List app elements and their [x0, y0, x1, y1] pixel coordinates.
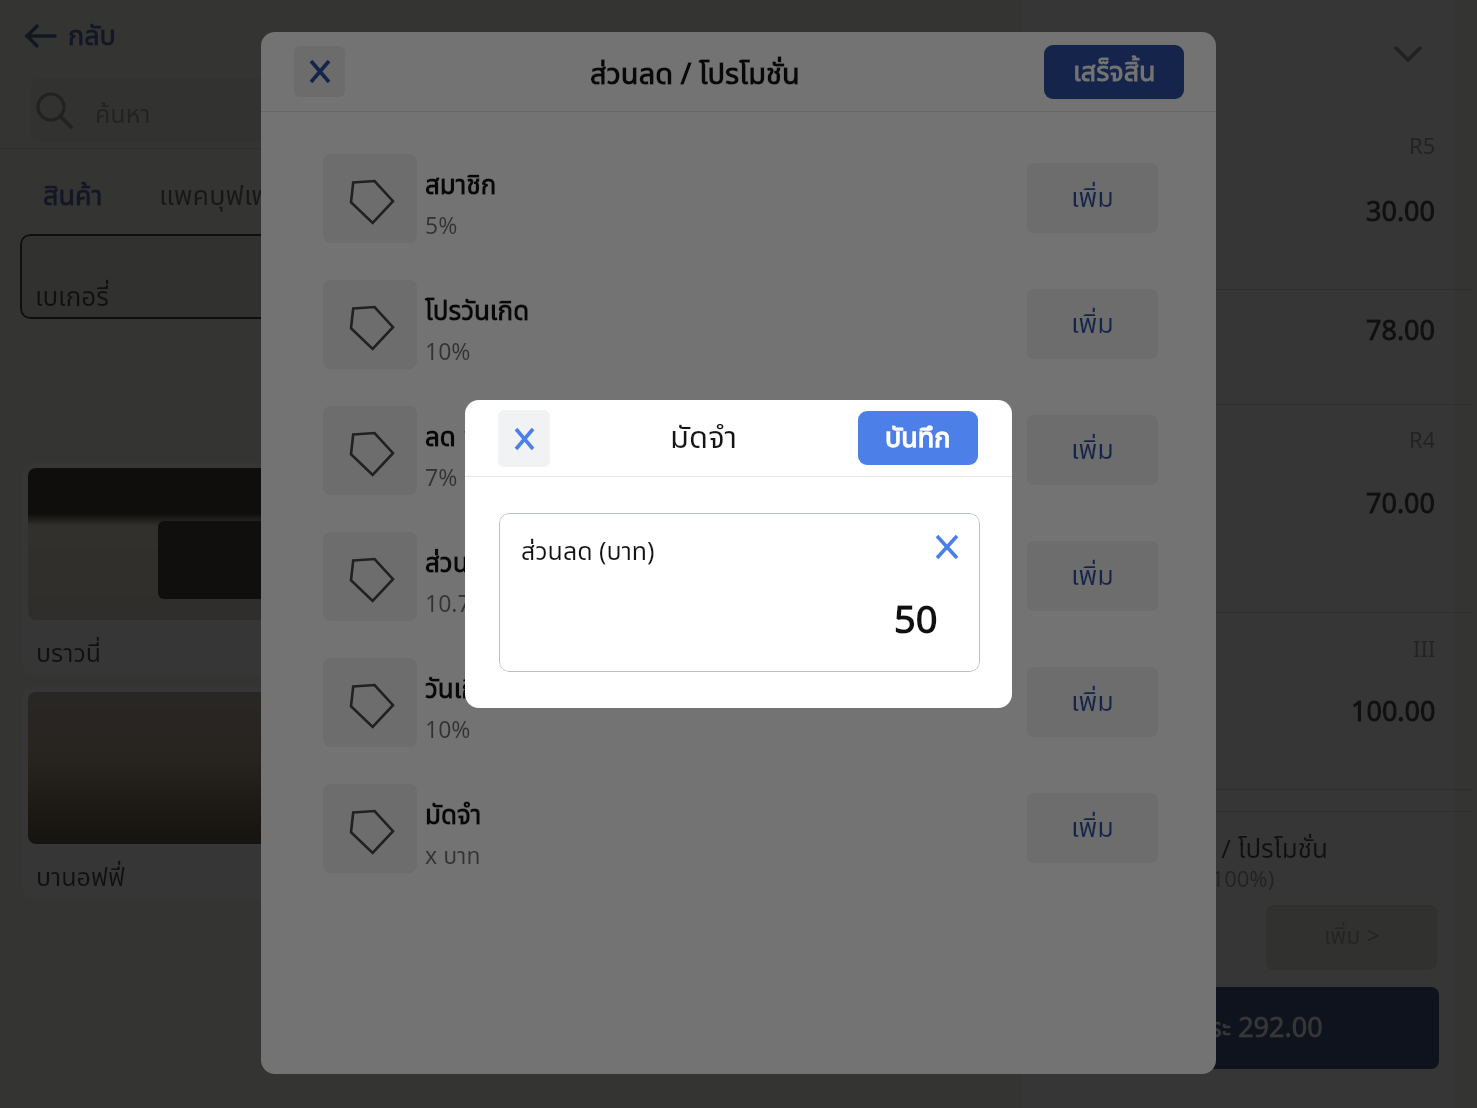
- button[interactable]: สมาชิก: [323, 135, 1158, 261]
- button[interactable]: เพิ่ม: [1027, 667, 1158, 737]
- staticText: ส่วนลด / โปรโมชั่น: [590, 53, 800, 97]
- button[interactable]: บันทึก: [858, 411, 978, 465]
- staticText: มัดจำ: [425, 796, 482, 835]
- button[interactable]: โปรวันเกิด: [323, 261, 1158, 387]
- button[interactable]: บานอฟฟี่: [22, 687, 500, 899]
- staticText: 78.00: [1366, 311, 1436, 341]
- button[interactable]: เพิ่ม: [1027, 415, 1158, 485]
- button[interactable]: เพิ่ม: [1027, 163, 1158, 233]
- button[interactable]: สินค้า: [43, 176, 103, 217]
- staticText: 10%: [425, 714, 471, 749]
- staticText: R5: [1409, 131, 1436, 157]
- staticText: บลูเบอรี่: [1022, 311, 1104, 341]
- button[interactable]: ลด 10: [323, 387, 1158, 513]
- staticText: ชำระ 292.00: [1183, 1008, 1323, 1049]
- staticText: เพิ่ม: [1071, 178, 1114, 219]
- staticText: โต๊ะ 1: [1046, 29, 1112, 76]
- button[interactable]: บราวนี่: [22, 463, 500, 675]
- staticText: เพิ่ม: [1071, 430, 1114, 471]
- staticText: เสร็จสิ้น: [1073, 52, 1156, 93]
- staticText: 100.00: [1351, 692, 1436, 722]
- button[interactable]: มัดจำ: [323, 765, 1158, 891]
- staticText: เพิ่ม >: [1324, 920, 1380, 955]
- staticText: ส่วนลด / โปรโมชั่น: [1140, 830, 1329, 869]
- staticText: x บาท: [425, 840, 481, 875]
- staticText: ส่วนลด: [425, 544, 500, 583]
- staticText: เพิ่ม: [1071, 556, 1114, 597]
- staticText: ส่วนลด (บาท): [521, 533, 655, 571]
- staticText: 50: [894, 593, 938, 650]
- staticText: (100%): [1205, 864, 1275, 897]
- button[interactable]: เบเกอรี่: [20, 234, 507, 319]
- button[interactable]: Expand: [1388, 32, 1428, 72]
- staticText: โปรวันเกิด: [425, 292, 530, 331]
- button[interactable]: แพคบุฟเฟ่ต์: [159, 176, 287, 217]
- button[interactable]: เพิ่ม: [1027, 541, 1158, 611]
- button[interactable]: กลับ: [24, 0, 1022, 72]
- staticText: 7%: [425, 462, 458, 497]
- staticText: แพคบุฟเฟ่ต์: [159, 176, 287, 217]
- staticText: สินค้า: [43, 176, 103, 217]
- staticText: เพิ่ม: [1071, 808, 1114, 849]
- button[interactable]: เสร็จสิ้น: [1044, 45, 1184, 99]
- staticText: วันเกิด: [425, 670, 494, 709]
- staticText: กลับ: [68, 16, 116, 57]
- button[interactable]: [31, 78, 1053, 142]
- button[interactable]: วันเกิด: [323, 639, 1158, 765]
- staticText: R4: [1409, 425, 1436, 451]
- staticText: 30.00: [1366, 192, 1436, 222]
- button[interactable]: ส่วนลด (บาท): [499, 513, 980, 672]
- staticText: 70.00: [1366, 484, 1436, 514]
- staticText: 10%: [425, 336, 471, 371]
- staticText: บานอฟฟี่: [36, 859, 126, 897]
- button[interactable]: เพิ่ม: [1027, 289, 1158, 359]
- staticText: ลด 10: [425, 418, 493, 457]
- staticText: เพิ่ม: [1071, 304, 1114, 345]
- staticText: มัดจำ: [670, 415, 738, 462]
- staticText: เบเกอรี่: [35, 278, 109, 317]
- staticText: 5%: [425, 210, 458, 245]
- button[interactable]: เพิ่ม: [1027, 793, 1158, 863]
- button[interactable]: ชำระ 292.00: [1066, 987, 1439, 1069]
- staticText: สมาชิก: [425, 166, 497, 205]
- staticText: III: [1413, 634, 1436, 660]
- staticText: บราวนี่: [36, 635, 102, 673]
- button[interactable]: Clear: [931, 531, 963, 563]
- staticText: เพิ่ม: [1071, 682, 1114, 723]
- button[interactable]: ส่วนลด: [323, 513, 1158, 639]
- staticText: ค้นหา: [95, 96, 151, 134]
- button[interactable]: Close: [498, 410, 550, 467]
- staticText: บันทึก: [885, 418, 951, 459]
- button[interactable]: Close: [294, 46, 345, 97]
- staticText: 10.7: [425, 588, 471, 623]
